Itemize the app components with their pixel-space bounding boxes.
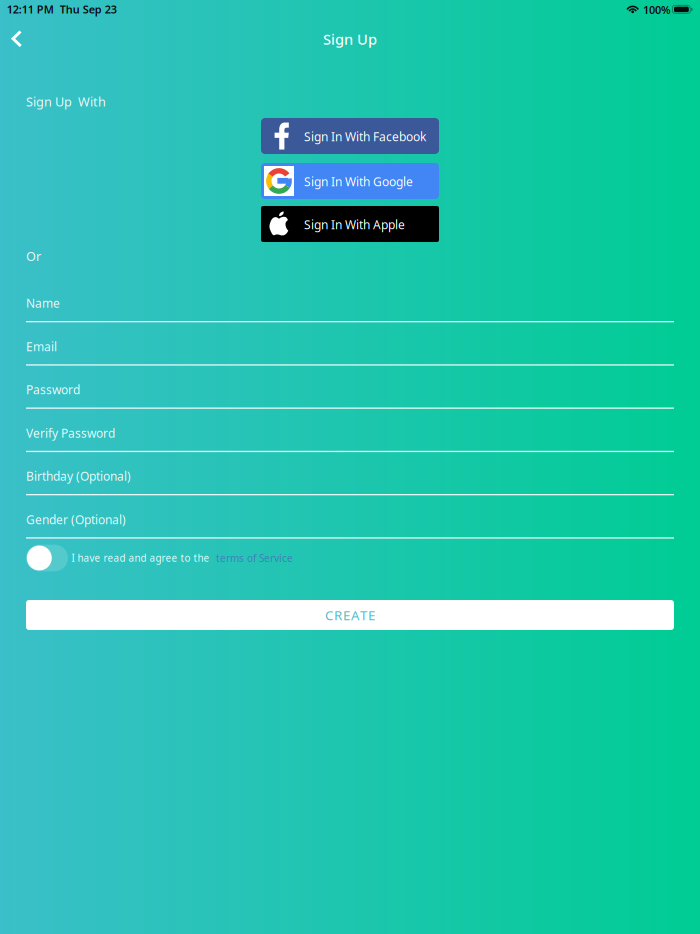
button[interactable]: Sign In With Apple bbox=[261, 206, 439, 242]
staticText: Gender (Optional) bbox=[26, 511, 126, 528]
staticText: Sign In With Facebook bbox=[304, 128, 426, 145]
staticText: 12:11 PM bbox=[7, 2, 54, 17]
staticText: I have read and agree to the bbox=[72, 551, 210, 565]
staticText: Name bbox=[26, 295, 60, 311]
staticText: Sign Up bbox=[323, 29, 377, 49]
staticText: Or bbox=[26, 247, 41, 265]
button[interactable]: I have read and agree to the bbox=[26, 545, 426, 571]
staticText: Email bbox=[26, 338, 57, 355]
button[interactable]: Sign In With Facebook bbox=[261, 118, 439, 154]
staticText: Sign In With Google bbox=[304, 173, 413, 190]
staticText: 100% bbox=[643, 2, 671, 17]
staticText: Sign Up With bbox=[26, 93, 106, 110]
staticText: Birthday (Optional) bbox=[26, 468, 131, 484]
button[interactable]: CREATE bbox=[26, 600, 674, 630]
staticText: terms of Service bbox=[216, 551, 293, 565]
staticText: Password bbox=[26, 381, 80, 398]
staticText: Thu Sep 23 bbox=[60, 2, 117, 17]
staticText: Sign In With Apple bbox=[304, 216, 405, 233]
button[interactable]: Sign In With Google bbox=[261, 163, 439, 199]
button[interactable]: Back bbox=[0, 22, 34, 56]
staticText: Verify Password bbox=[26, 425, 115, 441]
staticText: CREATE bbox=[325, 606, 375, 624]
